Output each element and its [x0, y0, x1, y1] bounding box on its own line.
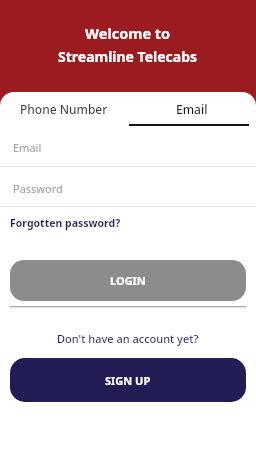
staticText: SIGN UP [105, 373, 151, 388]
button[interactable]: Phone Number [0, 92, 128, 126]
staticText: Welcome to [85, 23, 171, 43]
button[interactable]: Forgotten password? [10, 216, 121, 230]
staticText: Don't have an account yet? [57, 331, 199, 346]
button[interactable]: SIGN UP [10, 358, 246, 402]
staticText: Email [13, 140, 42, 155]
button[interactable]: Email [128, 92, 256, 126]
staticText: Password [13, 181, 63, 196]
staticText: Email [176, 101, 208, 117]
button[interactable]: LOGIN [10, 260, 246, 301]
staticText: Streamline Telecabs [58, 47, 198, 66]
staticText: LOGIN [110, 273, 146, 288]
staticText: Phone Number [20, 101, 108, 117]
